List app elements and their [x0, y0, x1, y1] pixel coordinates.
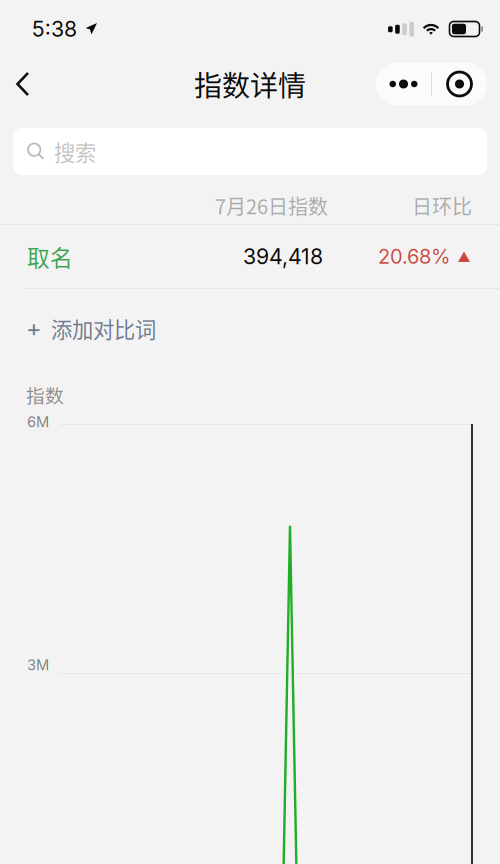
staticText: 7月26日指数 [215, 191, 328, 220]
button[interactable]: Back [0, 61, 46, 107]
button[interactable]: More [376, 62, 431, 105]
staticText: 5:38 [32, 16, 77, 42]
staticText: 6M [27, 413, 49, 431]
staticText: 取名 [27, 240, 73, 273]
staticText: 3M [27, 656, 49, 674]
staticText: 日环比 [412, 191, 472, 220]
staticText: 20.68% [378, 244, 450, 269]
button[interactable]: + [0, 289, 500, 359]
staticText: + [26, 314, 42, 343]
staticText: 指数详情 [194, 64, 306, 104]
staticText: 394,418 [243, 244, 323, 269]
staticText: 搜索 [54, 136, 96, 167]
staticText: 指数 [26, 381, 64, 408]
staticText: 添加对比词 [51, 313, 156, 344]
button[interactable]: Close [432, 62, 487, 105]
